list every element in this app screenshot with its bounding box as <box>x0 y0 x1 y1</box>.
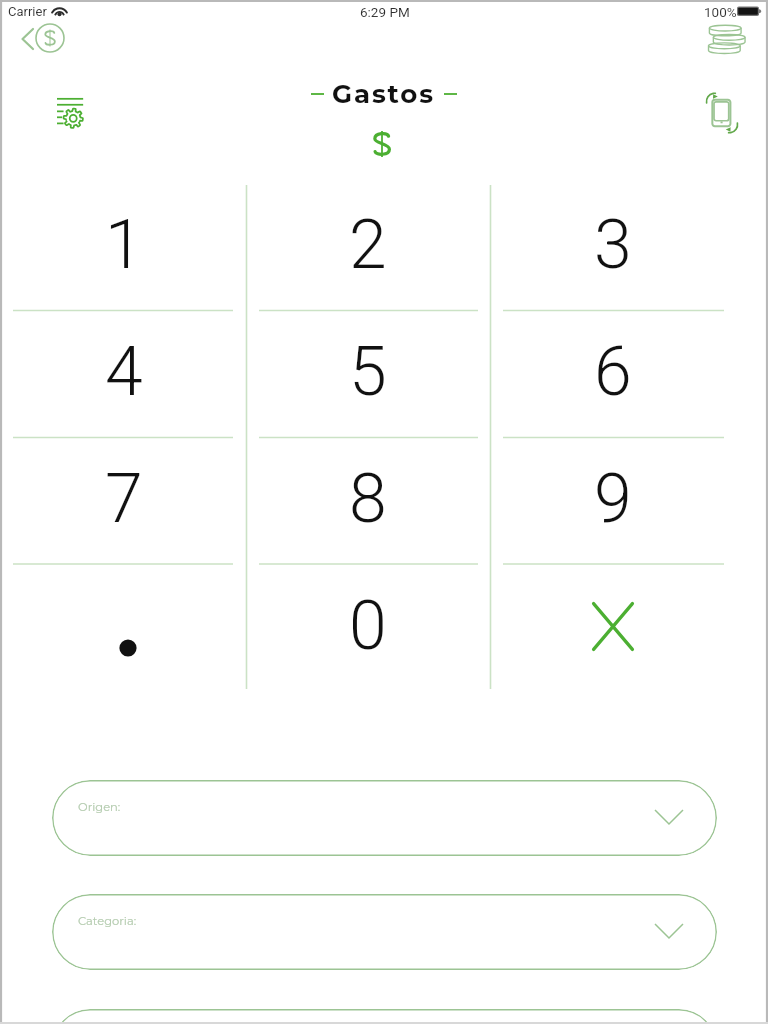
staticText: 8 <box>349 459 387 539</box>
button[interactable]: 9 <box>553 441 673 557</box>
staticText: 5 <box>349 332 387 412</box>
button[interactable]: 8 <box>308 441 428 557</box>
button[interactable]: 5 <box>308 314 428 430</box>
button[interactable]: 1 <box>64 187 184 303</box>
staticText: 6:29 PM <box>360 4 410 20</box>
staticText: 0 <box>349 586 387 666</box>
button[interactable]: Rotate screen <box>701 92 743 134</box>
button[interactable] <box>52 1009 717 1024</box>
staticText: Origen: <box>78 800 121 814</box>
button[interactable]: Balance <box>705 22 749 56</box>
button[interactable]: 3 <box>553 187 673 303</box>
button[interactable]: Delete <box>553 568 673 684</box>
button[interactable]: Back <box>16 20 72 58</box>
button[interactable]: 7 <box>64 441 184 557</box>
staticText: 3 <box>594 205 632 285</box>
staticText: 6 <box>594 332 632 412</box>
staticText: 2 <box>349 205 387 285</box>
staticText: 9 <box>594 459 632 539</box>
button[interactable]: 4 <box>64 314 184 430</box>
button[interactable]: 2 <box>308 187 428 303</box>
button[interactable]: Categoria: <box>52 894 717 970</box>
button[interactable]: Decimal point <box>64 568 184 684</box>
button[interactable]: Settings <box>56 97 84 130</box>
button[interactable]: Origen: <box>52 780 717 856</box>
staticText: 1 <box>105 205 143 285</box>
staticText: 4 <box>105 332 143 412</box>
staticText: 100% <box>704 4 737 20</box>
staticText: 7 <box>105 459 143 539</box>
button[interactable]: 6 <box>553 314 673 430</box>
staticText: Categoria: <box>78 914 137 928</box>
button[interactable]: 0 <box>308 568 428 684</box>
staticText: Carrier <box>8 4 47 19</box>
staticText: Gastos <box>332 78 436 110</box>
